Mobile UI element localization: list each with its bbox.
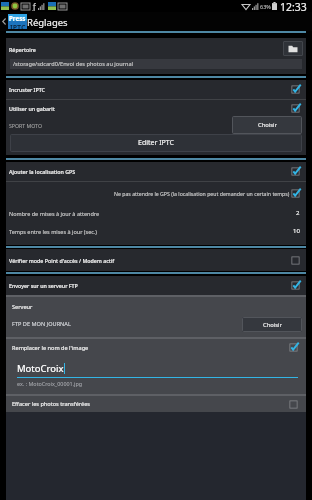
staticText: 63% xyxy=(260,3,271,10)
staticText: Incruster IPTC xyxy=(9,86,45,93)
staticText: Effacer les photos transférées xyxy=(12,400,91,408)
staticText: SPORT MOTO xyxy=(9,122,42,129)
staticText: Réglages xyxy=(27,16,68,29)
staticText: Envoyer sur un serveur FTP xyxy=(9,282,78,289)
staticText: Nombre de mises à jour à attendre xyxy=(9,210,100,217)
button[interactable]: Editer IPTC xyxy=(10,134,302,152)
staticText: Serveur xyxy=(12,303,33,311)
staticText: Ne pas attendre le GPS (la localisation … xyxy=(114,190,290,197)
staticText: Editer IPTC xyxy=(138,138,174,148)
staticText: 12:33 xyxy=(280,0,307,12)
staticText: FTP DE MON JOURNAL xyxy=(12,320,71,328)
staticText: MotoCroix xyxy=(17,362,64,375)
staticText: /storage/sdcard0/Envoi des photos au jou… xyxy=(13,60,133,68)
staticText: Choisir xyxy=(263,321,282,329)
staticText: 2 xyxy=(296,209,300,217)
staticText: Utiliser un gabarit xyxy=(9,105,55,112)
staticText: 10 xyxy=(293,227,300,235)
staticText: Répertoire xyxy=(9,46,36,53)
button[interactable]: Serveur xyxy=(6,297,306,337)
button[interactable]: Ajouter la localisation GPS xyxy=(6,162,306,181)
button[interactable]: Envoyer sur un serveur FTP xyxy=(6,276,306,295)
button[interactable]: Utiliser un gabarit xyxy=(6,100,306,116)
button[interactable]: Incruster IPTC xyxy=(6,80,306,99)
staticText: Remplacer le nom de l'image xyxy=(12,344,89,352)
button[interactable]: Press IPTC xyxy=(8,14,27,29)
staticText: Vérifier mode Point d'accès / Modem acti… xyxy=(9,257,115,264)
button[interactable]: Choisir xyxy=(242,317,302,332)
button[interactable]: Choose folder xyxy=(283,41,303,56)
button[interactable]: Choisir xyxy=(232,116,302,134)
staticText: Press xyxy=(9,14,26,22)
staticText: Ajouter la localisation GPS xyxy=(9,168,76,175)
button[interactable]: Effacer les photos transférées xyxy=(6,396,306,412)
staticText: ex. : MotoCroix_00001.jpg xyxy=(17,380,83,387)
staticText: IPTC xyxy=(10,23,26,29)
button[interactable]: Temps entre les mises à jour (sec.) xyxy=(6,222,306,240)
button[interactable]: Back xyxy=(0,12,8,31)
button[interactable]: Nombre de mises à jour à attendre xyxy=(6,204,306,222)
button[interactable]: Vérifier mode Point d'accès / Modem acti… xyxy=(6,249,306,271)
staticText: ƒ xyxy=(32,0,36,11)
button[interactable]: Remplacer le nom de l'image xyxy=(6,339,306,356)
staticText: Choisir xyxy=(258,121,277,129)
staticText: Temps entre les mises à jour (sec.) xyxy=(9,228,98,235)
